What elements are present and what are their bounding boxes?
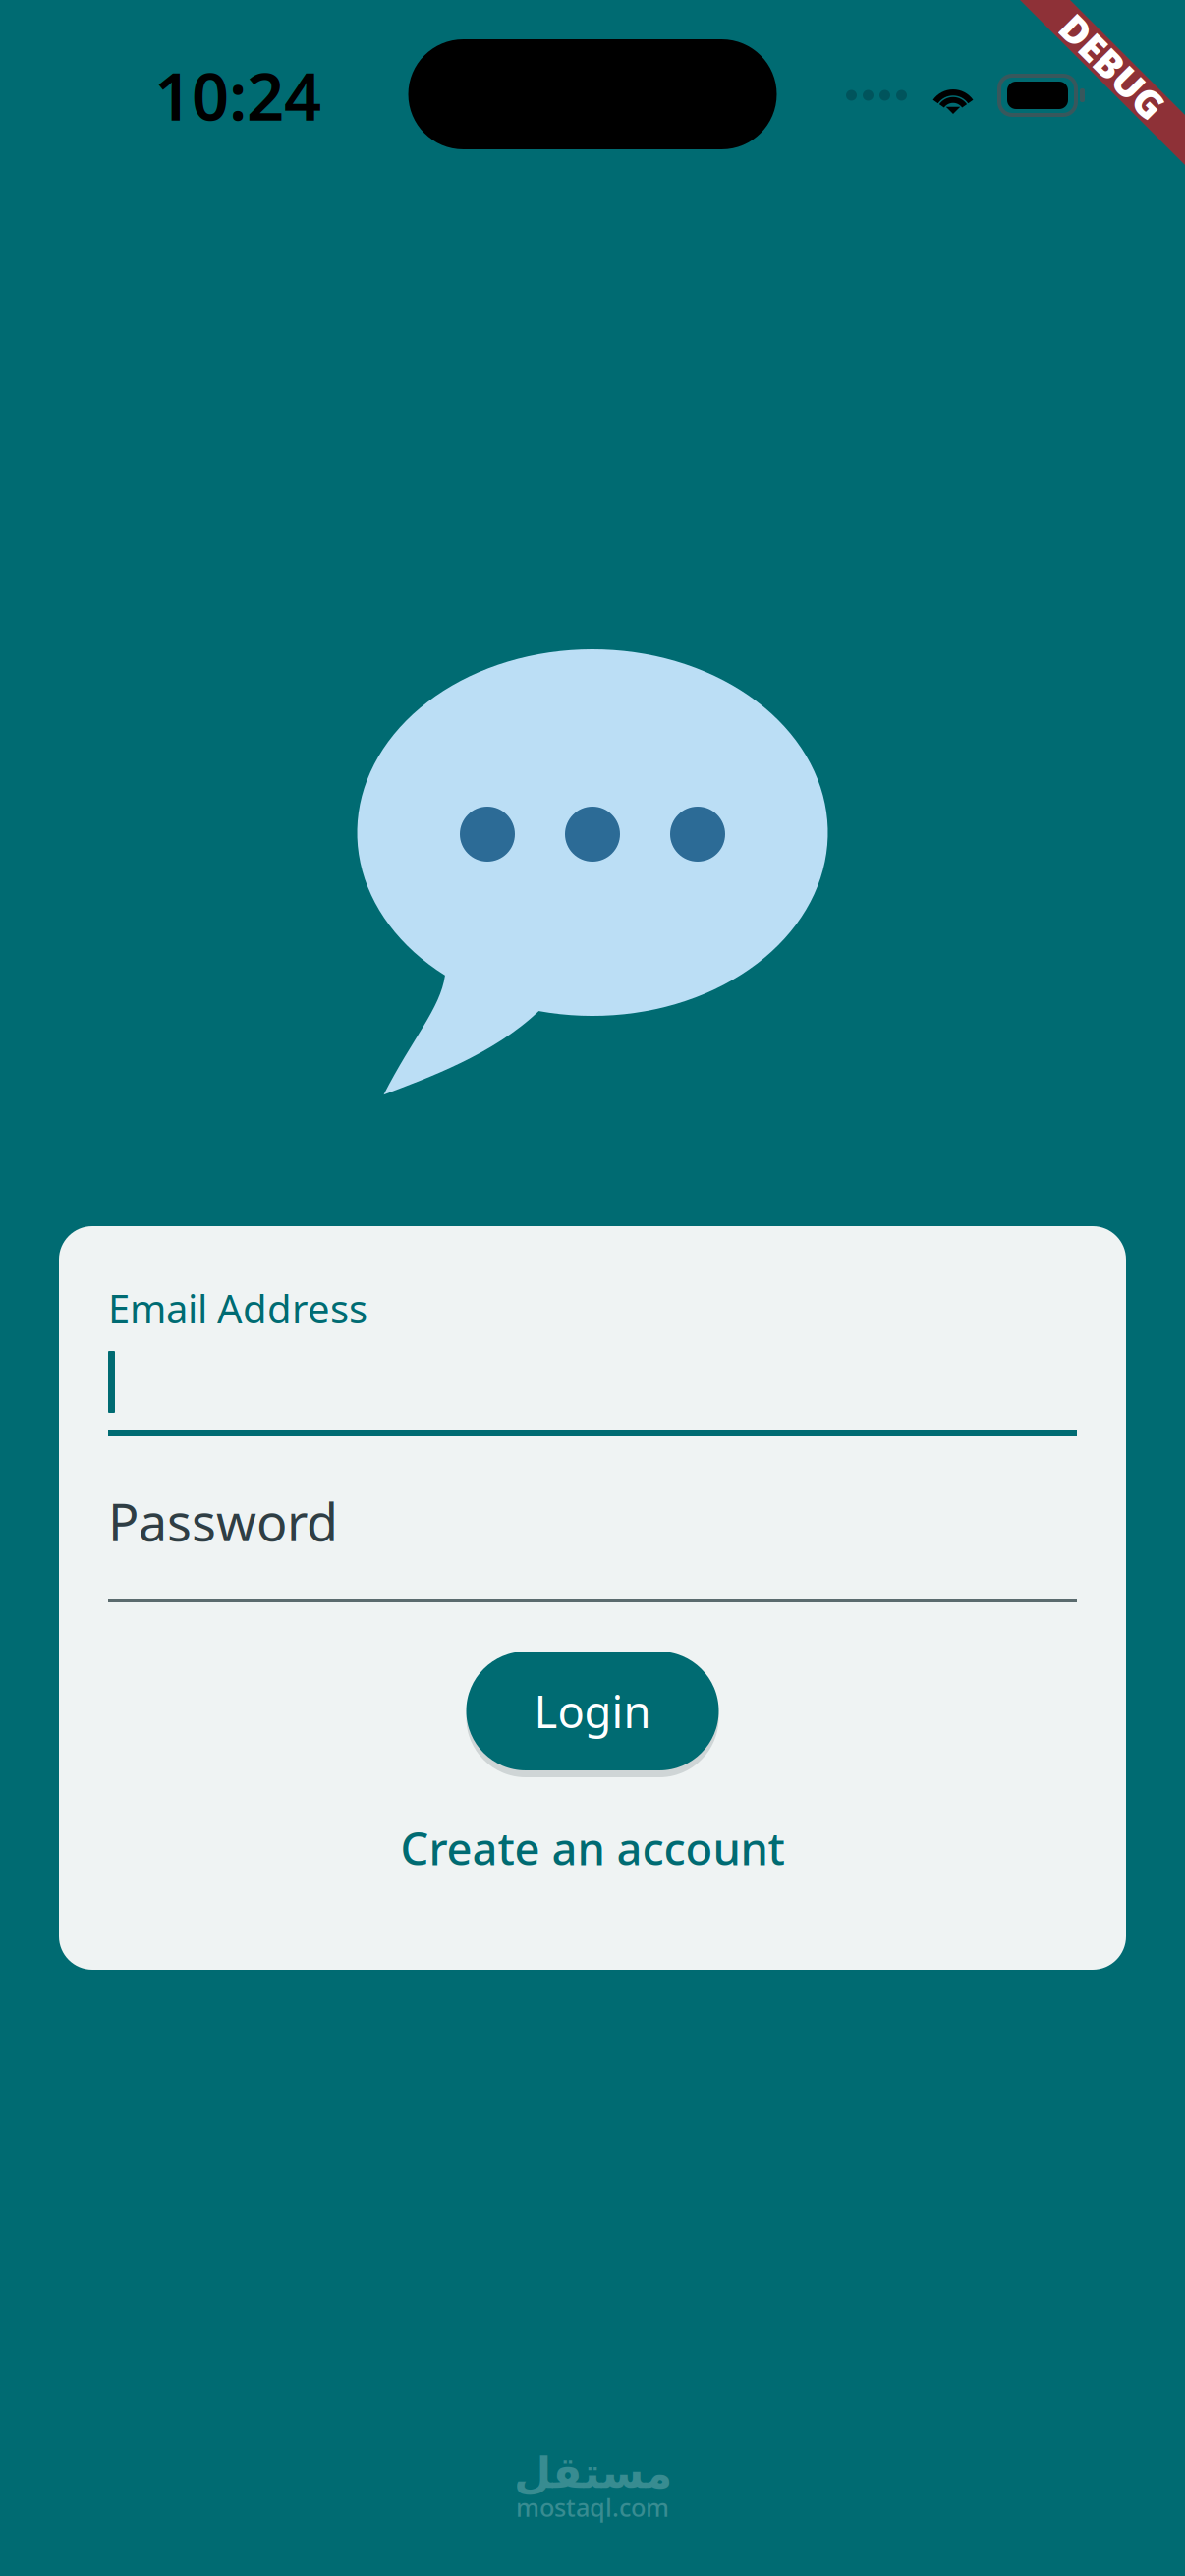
staticText: mostaql.com	[516, 2491, 669, 2524]
staticText: Email Address	[108, 1282, 367, 1334]
button[interactable]: Create an account	[400, 1819, 785, 1877]
staticText: Login	[534, 1681, 651, 1741]
button[interactable]: Login	[466, 1652, 719, 1777]
staticText: 10:24	[154, 52, 321, 139]
staticText: مستقل	[513, 2448, 672, 2497]
staticText: Create an account	[400, 1818, 785, 1878]
staticText: DEBUG	[1047, 41, 1178, 92]
button[interactable]: Password	[108, 1436, 1077, 1602]
button[interactable]: Email Address	[108, 1289, 1077, 1436]
staticText: Password	[108, 1487, 338, 1555]
